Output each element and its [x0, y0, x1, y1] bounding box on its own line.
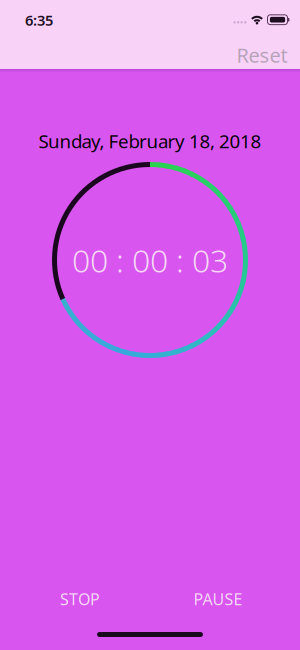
staticText: 00 : 00 : 03 [72, 239, 228, 281]
staticText: PAUSE [193, 588, 242, 610]
staticText: 6:35 [25, 10, 53, 30]
staticText: STOP [60, 588, 100, 610]
button[interactable]: STOP [60, 588, 100, 610]
button[interactable]: PAUSE [193, 588, 242, 610]
button[interactable]: Reset [236, 42, 287, 68]
staticText: Sunday, February 18, 2018 [38, 129, 261, 153]
staticText: Reset [236, 42, 287, 68]
